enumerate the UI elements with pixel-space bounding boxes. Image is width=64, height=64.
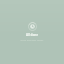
staticText: All done	[2, 33, 62, 37]
staticText: Goal reached today	[2, 38, 62, 41]
button[interactable]: Activity	[28, 22, 37, 31]
